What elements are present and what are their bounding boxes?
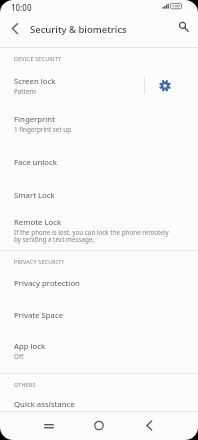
button[interactable]: Face unlock (0, 146, 198, 179)
staticText: Off (14, 352, 24, 361)
button[interactable]: Fingerprint (0, 104, 198, 144)
staticText: Fingerprint (14, 114, 55, 125)
button[interactable] (150, 71, 180, 101)
staticText: Privacy protection (14, 278, 80, 289)
staticText: Remote Lock (14, 217, 62, 228)
staticText: Quick assistance (14, 399, 75, 410)
staticText: Face unlock (14, 157, 57, 168)
staticText: If the phone is lost, you can lock the p… (14, 228, 169, 244)
button[interactable]: Screen lock (0, 66, 198, 106)
button[interactable]: Private Space (0, 299, 198, 332)
staticText: OTHERS (14, 381, 36, 388)
button[interactable] (31, 409, 67, 439)
staticText: Screen lock (14, 76, 56, 87)
staticText: DEVICE SECURITY (14, 55, 62, 62)
staticText: Pattern (14, 87, 36, 96)
staticText: Smart Lock (14, 190, 55, 201)
button[interactable] (81, 409, 117, 439)
staticText: Private Space (14, 310, 64, 321)
staticText: Security & biometrics (30, 23, 127, 36)
button[interactable]: Privacy protection (0, 266, 198, 300)
staticText: PRIVACY SECURITY (14, 258, 65, 265)
staticText: 10:00 (11, 2, 32, 13)
button[interactable]: Remote Lock (0, 212, 198, 249)
staticText: 1 fingerprint set up (14, 125, 72, 134)
button[interactable]: Smart Lock (0, 179, 198, 212)
button[interactable] (131, 409, 167, 439)
button[interactable] (170, 14, 196, 40)
button[interactable]: App lock (0, 334, 198, 368)
button[interactable]: Quick assistance (0, 396, 198, 412)
button[interactable] (2, 16, 28, 42)
staticText: App lock (14, 341, 46, 352)
